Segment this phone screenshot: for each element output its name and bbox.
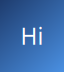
staticText: Hi: [20, 21, 43, 51]
